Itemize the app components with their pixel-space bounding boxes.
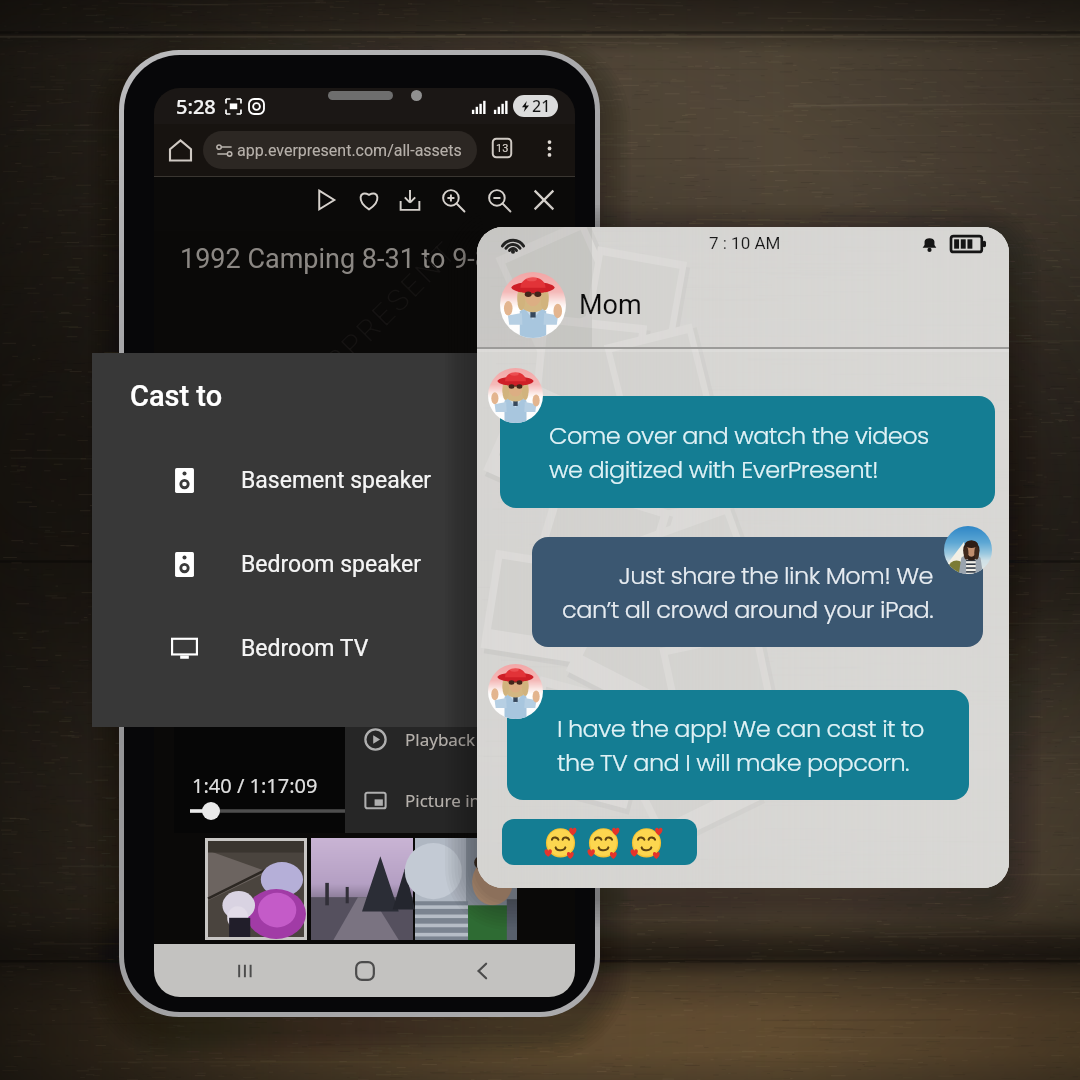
staticText: Come over and watch the videos we digiti…: [549, 419, 929, 486]
staticText: Cast to: [130, 379, 223, 413]
staticText: Bedroom speaker: [241, 551, 422, 578]
staticText: I have the app! We can cast it to the TV…: [557, 712, 924, 779]
other: More options: [540, 139, 559, 158]
button[interactable]: [502, 819, 697, 865]
button[interactable]: More options: [533, 132, 565, 164]
other: Download: [397, 187, 423, 213]
staticText: 5:28: [176, 93, 216, 120]
button[interactable]: Download: [389, 179, 431, 221]
other: Tabs: [491, 137, 513, 159]
button[interactable]: Playback speed: [345, 710, 575, 768]
other: Wi-Fi: [501, 233, 525, 257]
other: Home: [352, 958, 378, 984]
staticText: 7 : 10 AM: [709, 233, 781, 253]
button[interactable]: Home: [338, 944, 392, 997]
other: Recents: [233, 958, 259, 984]
button[interactable]: Recents: [219, 944, 273, 997]
button[interactable]: Bedroom TV: [152, 617, 477, 679]
staticText: Playback speed: [405, 728, 528, 751]
other: Close: [531, 187, 557, 213]
button[interactable]: Mom: [477, 262, 777, 348]
staticText: app.everpresent.com/all-assets: [237, 141, 462, 160]
button[interactable]: Close: [523, 179, 565, 221]
staticText: Bedroom TV: [241, 635, 369, 662]
button[interactable]: [311, 838, 413, 940]
button[interactable]: Play: [305, 179, 347, 221]
staticText: 13: [496, 142, 509, 155]
staticText: 1992 Camping 8-31 to 9-8.mp4: [180, 243, 552, 275]
staticText: Basement speaker: [241, 467, 432, 494]
staticText: Mom: [579, 289, 642, 321]
other: Battery: [951, 235, 986, 253]
staticText: 1:40 / 1:17:09: [192, 772, 318, 799]
other: Play: [313, 187, 339, 213]
other: Zoom in: [440, 187, 466, 213]
other: Notifications: [920, 234, 939, 253]
button[interactable]: Back: [456, 944, 510, 997]
button[interactable]: [415, 838, 517, 940]
button[interactable]: Home: [162, 132, 198, 168]
button[interactable]: Tabs: [486, 132, 518, 164]
staticText: Just share the link Mom! We can’t all cr…: [562, 559, 933, 626]
staticText: Picture in picture: [405, 789, 541, 812]
button[interactable]: Picture in picture: [345, 771, 575, 829]
other: Home: [168, 138, 193, 163]
button[interactable]: Zoom in: [432, 179, 474, 221]
button[interactable]: Come over and watch the videos we digiti…: [500, 396, 995, 508]
button[interactable]: I have the app! We can cast it to the TV…: [507, 690, 969, 800]
button[interactable]: [205, 838, 307, 940]
button[interactable]: app.everpresent.com/all-assets: [203, 131, 477, 169]
button[interactable]: Favorite: [348, 179, 390, 221]
button[interactable]: Basement speaker: [152, 449, 477, 511]
other: Zoom out: [486, 187, 512, 213]
staticText: 21: [532, 95, 551, 117]
other: Back: [470, 958, 496, 984]
button[interactable]: Zoom out: [478, 179, 520, 221]
button[interactable]: Just share the link Mom! We can’t all cr…: [532, 537, 983, 647]
button[interactable]: Bedroom speaker: [152, 533, 477, 595]
staticText: EVERPRESENT: [275, 233, 464, 423]
other: Favorite: [356, 187, 382, 213]
